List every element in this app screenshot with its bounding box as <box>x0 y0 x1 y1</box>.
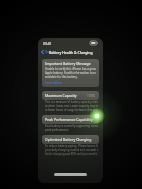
staticText: your daily charging routine so it can wa… <box>45 148 98 152</box>
staticText: Maximum Capacity <box>45 93 77 98</box>
staticText: This is a measure of battery capacity re… <box>45 100 98 104</box>
staticText: Your battery is currently supporting nor… <box>45 124 98 128</box>
staticText: Peak Performance Capability <box>45 117 93 122</box>
staticText: Learn More <box>45 81 62 85</box>
staticText: to when it was new. Lower capacity may r… <box>45 104 98 108</box>
staticText: Unable to verify this iPhone has a genui… <box>45 67 96 71</box>
staticText: finish charging past 80% until you need … <box>45 152 98 156</box>
staticText: Battery Health & Charging <box>49 50 93 55</box>
button[interactable]: Maximum Capacity <box>42 91 99 100</box>
staticText: Apple battery. Health information is not <box>45 71 96 75</box>
button[interactable]: Optimized Battery Charging <box>42 135 99 144</box>
button[interactable]: Peak Performance Capability <box>42 115 99 124</box>
button[interactable]: Important Battery Message <box>42 59 99 87</box>
staticText: available for this battery. <box>45 75 78 79</box>
staticText: Battery <box>45 50 56 54</box>
staticText: peak performance. <box>45 128 69 132</box>
other: Battery status <box>90 41 98 45</box>
button[interactable]: Battery <box>40 49 57 55</box>
staticText: To reduce battery ageing, iPhone learns … <box>45 144 98 148</box>
button[interactable]: Learn More <box>45 81 62 85</box>
staticText: Important Battery Message <box>45 61 91 66</box>
staticText: Optimized Battery Charging <box>45 137 92 142</box>
staticText: 09:41 <box>43 41 52 45</box>
staticText: 100% <box>87 94 96 98</box>
staticText: in fewer hours of usage between charges. <box>45 108 98 112</box>
